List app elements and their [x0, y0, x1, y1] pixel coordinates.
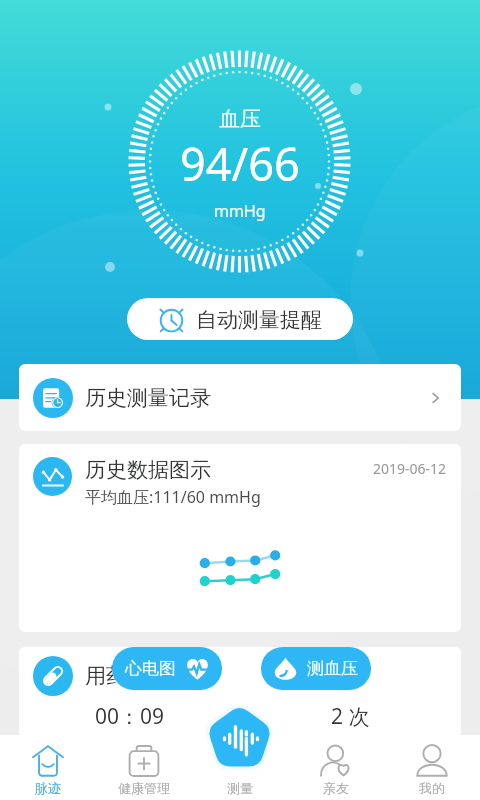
staticText: 我的	[419, 780, 445, 796]
staticText: 测血压	[307, 658, 358, 679]
staticText: 脉迹	[35, 780, 61, 796]
button[interactable]: 我的	[384, 735, 480, 800]
button[interactable]: 健康管理	[96, 735, 192, 800]
button[interactable]: 脉迹	[0, 735, 96, 800]
button[interactable]: 亲友	[288, 735, 384, 800]
staticText: 心电图	[125, 658, 176, 679]
button[interactable]: 心电图	[112, 647, 222, 690]
button[interactable]: 历史测量记录	[19, 364, 461, 431]
staticText: 健康管理	[118, 780, 170, 796]
staticText: 用药提醒	[85, 663, 169, 689]
staticText: 平均血压:111/60 mmHg	[85, 486, 261, 508]
staticText: 00：09	[95, 702, 165, 731]
button[interactable]: 自动测量提醒	[127, 298, 353, 340]
staticText: 自动测量提醒	[196, 307, 322, 333]
staticText: 测量	[227, 780, 253, 796]
button[interactable]: 测量	[200, 698, 280, 763]
staticText: mmHg	[214, 200, 266, 222]
staticText: 血压	[219, 106, 261, 132]
staticText: 亲友	[323, 780, 349, 796]
staticText: 2 次	[331, 702, 370, 731]
button[interactable]: 测量	[192, 735, 288, 800]
staticText: 94/66	[180, 133, 300, 193]
staticText: 历史数据图示	[85, 457, 211, 483]
staticText: 历史测量记录	[85, 385, 211, 411]
button[interactable]: 历史数据图示	[19, 444, 461, 632]
button[interactable]: 测血压	[261, 647, 371, 690]
staticText: 2019-06-12	[373, 459, 447, 478]
